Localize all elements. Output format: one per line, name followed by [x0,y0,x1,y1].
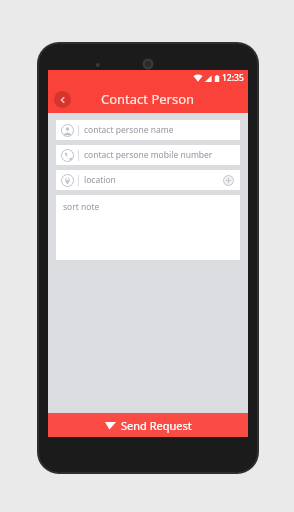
button[interactable]: Add location [223,175,234,186]
button[interactable]: contact persone mobile number [56,145,240,165]
staticText: contact persone name [84,124,174,136]
button[interactable]: Back [54,91,71,108]
staticText: sort note [63,201,100,213]
button[interactable]: location [56,170,240,190]
staticText: Send Request [121,418,192,433]
button[interactable]: sort note [56,195,240,260]
staticText: contact persone mobile number [84,149,213,161]
staticText: 12:35 [222,72,244,84]
button[interactable]: Send Request [48,413,248,437]
staticText: location [84,174,116,186]
staticText: Contact Person [101,90,195,108]
button[interactable]: contact persone name [56,120,240,140]
